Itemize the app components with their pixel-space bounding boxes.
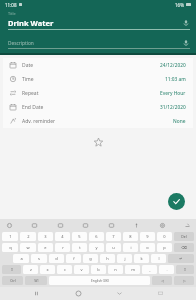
button[interactable]: Voice	[131, 220, 141, 230]
button[interactable]: 7	[106, 232, 121, 241]
staticText: 1	[9, 234, 12, 239]
button[interactable]: s	[31, 254, 47, 263]
staticText: p	[163, 245, 166, 250]
staticText: None	[173, 118, 186, 125]
staticText: Title	[8, 11, 16, 16]
button[interactable]: ↵	[168, 254, 194, 263]
button[interactable]: ⇧	[2, 265, 21, 274]
button[interactable]: g	[83, 254, 98, 263]
button[interactable]: Settings	[157, 220, 167, 230]
button[interactable]: e	[38, 243, 53, 252]
staticText: ⌫	[181, 245, 187, 250]
button[interactable]: Favorite	[94, 138, 103, 147]
button[interactable]: End Date	[3, 100, 193, 114]
staticText: g	[89, 256, 92, 261]
button[interactable]: Save	[168, 193, 185, 210]
button[interactable]: Clipboard	[106, 220, 116, 230]
button[interactable]: t	[72, 243, 87, 252]
button[interactable]: d	[49, 254, 64, 263]
button[interactable]: c	[57, 265, 72, 274]
button[interactable]: ⌫	[174, 243, 194, 252]
staticText: Time	[22, 76, 165, 83]
staticText: w	[26, 245, 30, 250]
staticText: ⇧	[10, 267, 14, 272]
button[interactable]: 3	[38, 232, 53, 241]
staticText: u	[112, 245, 115, 250]
staticText: 9	[146, 234, 149, 239]
staticText: ⇧	[183, 267, 187, 272]
button[interactable]: l	[151, 254, 166, 263]
button[interactable]: y	[89, 243, 104, 252]
button[interactable]: k	[134, 254, 149, 263]
button[interactable]: i	[123, 243, 138, 252]
button[interactable]: 1	[2, 232, 18, 241]
button[interactable]: Emoji	[4, 220, 14, 230]
button[interactable]: j	[117, 254, 132, 263]
button[interactable]: Repeat	[3, 86, 193, 100]
staticText: .	[166, 267, 168, 272]
button[interactable]: Adv. reminder	[3, 114, 193, 128]
button[interactable]: ◁	[152, 276, 172, 285]
button[interactable]: ⇧	[176, 265, 194, 274]
button[interactable]: a	[13, 254, 29, 263]
button[interactable]: Ctrl	[2, 276, 23, 285]
staticText: x	[46, 267, 49, 272]
button[interactable]: ▷	[174, 276, 194, 285]
button[interactable]: b	[91, 265, 106, 274]
button[interactable]: u	[106, 243, 121, 252]
button[interactable]: f	[66, 254, 81, 263]
button[interactable]: o	[140, 243, 155, 252]
staticText: 31/12/2020	[160, 104, 186, 111]
button[interactable]: Voice input title	[182, 19, 190, 27]
button[interactable]: Home	[73, 288, 84, 299]
staticText: a	[20, 256, 23, 261]
staticText: s	[38, 256, 40, 261]
staticText: Del	[181, 234, 187, 239]
button[interactable]: !#1	[25, 276, 47, 285]
button[interactable]: 5	[72, 232, 87, 241]
staticText: 4	[61, 234, 64, 239]
staticText: English (UK)	[91, 279, 109, 283]
staticText: Description	[8, 40, 182, 47]
staticText: Adv. reminder	[22, 118, 173, 125]
button[interactable]: 0	[157, 232, 172, 241]
button[interactable]: Voice input description	[182, 39, 190, 47]
button[interactable]: Recents	[31, 288, 42, 299]
button[interactable]: p	[157, 243, 172, 252]
button[interactable]: Translate	[80, 220, 90, 230]
button[interactable]: ,	[142, 265, 157, 274]
button[interactable]: 6	[89, 232, 104, 241]
button[interactable]: Time	[3, 72, 193, 86]
button[interactable]: m	[125, 265, 140, 274]
button[interactable]: v	[74, 265, 89, 274]
button[interactable]: r	[55, 243, 70, 252]
button[interactable]: 8	[123, 232, 138, 241]
staticText: End Date	[22, 104, 160, 111]
button[interactable]: 9	[140, 232, 155, 241]
button[interactable]: Hide keyboard	[155, 288, 166, 299]
button[interactable]: x	[40, 265, 55, 274]
button[interactable]: GIF	[55, 220, 65, 230]
button[interactable]: n	[108, 265, 123, 274]
button[interactable]: h	[100, 254, 115, 263]
button[interactable]: Del	[174, 232, 194, 241]
staticText: Repeat	[22, 90, 160, 97]
button[interactable]: Date	[3, 58, 193, 72]
button[interactable]: 4	[55, 232, 70, 241]
button[interactable]: Sticker	[29, 220, 39, 230]
button[interactable]: q	[2, 243, 18, 252]
staticText: ▷	[183, 279, 186, 283]
staticText: 16%	[175, 2, 184, 8]
button[interactable]: z	[23, 265, 38, 274]
button[interactable]: English (UK)	[49, 276, 150, 285]
staticText: 0	[163, 234, 166, 239]
button[interactable]: Back	[114, 288, 125, 299]
staticText: 6	[95, 234, 98, 239]
staticText: 2	[27, 234, 30, 239]
button[interactable]: w	[20, 243, 36, 252]
button[interactable]: More	[182, 220, 192, 230]
staticText: r	[62, 245, 64, 250]
staticText: c	[64, 267, 66, 272]
button[interactable]: 2	[20, 232, 36, 241]
